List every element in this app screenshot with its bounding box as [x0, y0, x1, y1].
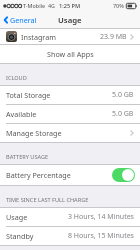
- staticText: 23.9 MB: [100, 32, 127, 42]
- staticText: Battery Percentage: [6, 170, 71, 180]
- button[interactable]: Instagram: [0, 29, 140, 44]
- staticText: Total Storage: [6, 90, 51, 100]
- staticText: 70%: [113, 2, 124, 9]
- button[interactable]: Battery Percentage: [0, 165, 140, 185]
- staticText: 3 Hours, 14 Minutes: [68, 212, 134, 222]
- button[interactable]: Usage: [0, 208, 140, 226]
- button[interactable]: General: [0, 12, 42, 28]
- staticText: Show all Apps: [47, 49, 94, 59]
- staticText: T-Mobile: [23, 2, 46, 9]
- other: Open: [130, 130, 134, 136]
- staticText: Standby: [6, 231, 34, 241]
- staticText: Available: [6, 109, 37, 119]
- staticText: TIME SINCE LAST FULL CHARGE: [6, 196, 89, 204]
- staticText: BATTERY USAGE: [6, 153, 49, 161]
- other: Open: [130, 34, 134, 40]
- button[interactable]: Show all Apps: [0, 45, 140, 63]
- staticText: Usage: [58, 15, 82, 26]
- button[interactable]: Total Storage: [0, 86, 140, 104]
- staticText: 1:25 PM: [59, 2, 81, 10]
- button[interactable]: Available: [0, 105, 140, 123]
- staticText: ICLOUD: [6, 74, 27, 82]
- staticText: 4G: [48, 2, 56, 9]
- staticText: General: [10, 15, 37, 25]
- other: Battery Percentage, on: [112, 168, 135, 182]
- staticText: Usage: [6, 212, 28, 222]
- button[interactable]: Standby: [0, 227, 140, 245]
- staticText: Manage Storage: [6, 128, 62, 138]
- staticText: 5.0 GB: [112, 90, 134, 100]
- staticText: Instagram: [21, 32, 56, 42]
- staticText: 8 Hours, 15 Minutes: [68, 231, 134, 241]
- button[interactable]: Manage Storage: [0, 124, 140, 142]
- staticText: 5.0 GB: [112, 109, 134, 119]
